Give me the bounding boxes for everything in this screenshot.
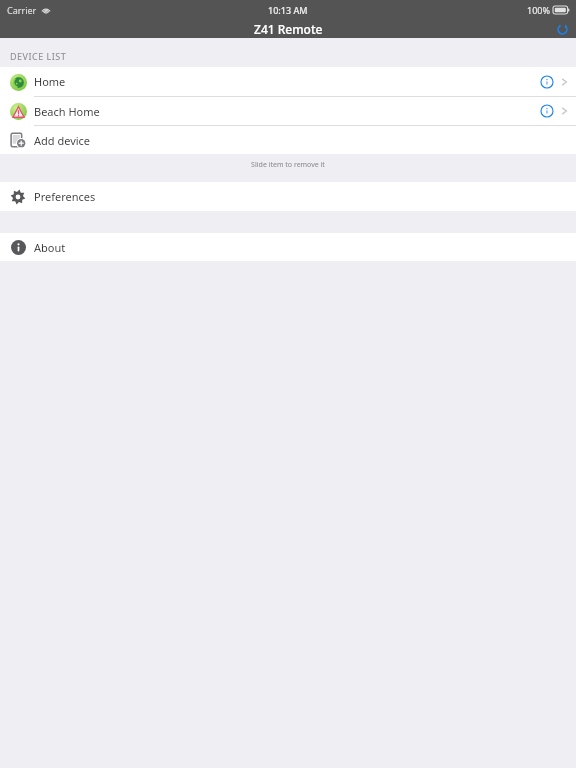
staticText: Slide item to remove it bbox=[251, 160, 325, 170]
button[interactable]: Beach Home bbox=[0, 97, 576, 125]
staticText: About bbox=[34, 240, 66, 255]
button[interactable]: Info about Beach Home bbox=[536, 100, 558, 122]
staticText: Preferences bbox=[34, 189, 96, 204]
staticText: Add device bbox=[34, 133, 91, 148]
staticText: DEVICE LIST bbox=[10, 50, 67, 62]
button[interactable]: Add device bbox=[0, 126, 576, 154]
staticText: Beach Home bbox=[34, 104, 100, 119]
button[interactable]: Home bbox=[0, 67, 576, 96]
staticText: Z41 Remote bbox=[254, 21, 323, 37]
button[interactable]: Info about Home bbox=[536, 71, 558, 93]
button[interactable]: Preferences bbox=[0, 182, 576, 211]
button[interactable]: About bbox=[0, 233, 576, 261]
staticText: 100% bbox=[527, 4, 550, 16]
staticText: 10:13 AM bbox=[268, 4, 308, 16]
staticText: Carrier bbox=[7, 4, 37, 16]
staticText: Home bbox=[34, 74, 66, 89]
button[interactable]: Refresh device list bbox=[553, 20, 571, 38]
